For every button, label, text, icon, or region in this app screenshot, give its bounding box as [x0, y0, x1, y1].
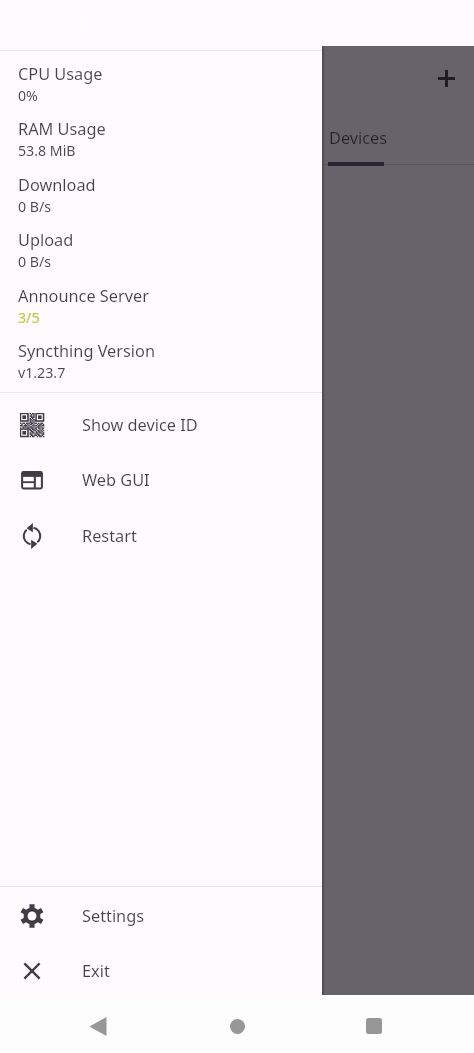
button[interactable]: Show device ID	[0, 397, 322, 452]
staticText: Download	[18, 174, 96, 196]
staticText: 0%	[18, 86, 38, 105]
staticText: v1.23.7	[18, 363, 66, 382]
button[interactable]: Exit	[0, 943, 322, 998]
staticText: CPU Usage	[18, 63, 103, 85]
button[interactable]: Upload	[0, 217, 322, 272]
staticText: Upload	[18, 229, 74, 251]
staticText: Web GUI	[82, 469, 150, 491]
staticText: Exit	[82, 960, 110, 982]
button[interactable]: Back	[74, 1002, 122, 1050]
button[interactable]: RAM Usage	[0, 106, 322, 161]
staticText: RAM Usage	[18, 118, 106, 140]
staticText: Show device ID	[82, 414, 198, 436]
button[interactable]: Download	[0, 162, 322, 217]
button[interactable]: Settings	[0, 888, 322, 943]
button[interactable]: Home	[213, 1002, 261, 1050]
button[interactable]: Recents	[350, 1002, 398, 1050]
staticText: 0 B/s	[18, 252, 52, 271]
staticText: 0 B/s	[18, 197, 52, 216]
button[interactable]: Add	[425, 57, 468, 100]
button[interactable]: Close navigation drawer	[0, 46, 474, 995]
button[interactable]: Devices	[322, 110, 474, 164]
staticText: Syncthing Version	[18, 340, 155, 362]
button[interactable]: Syncthing Version	[0, 328, 322, 383]
staticText: Settings	[82, 905, 145, 927]
staticText: 3/5	[18, 308, 40, 327]
button[interactable]: Announce Server	[0, 273, 322, 328]
staticText: Announce Server	[18, 285, 149, 307]
button[interactable]: CPU Usage	[0, 51, 322, 106]
staticText: Devices	[329, 127, 388, 149]
button[interactable]: Restart	[0, 508, 322, 563]
button[interactable]: Web GUI	[0, 452, 322, 507]
staticText: 53.8 MiB	[18, 141, 76, 160]
staticText: Restart	[82, 525, 137, 547]
